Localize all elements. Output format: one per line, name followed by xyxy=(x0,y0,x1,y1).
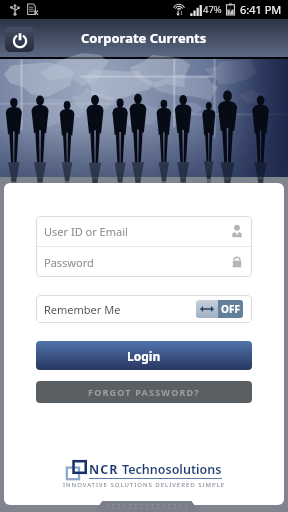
staticText: NCR xyxy=(89,461,119,478)
staticText: 6:41 PM xyxy=(240,2,282,17)
button[interactable]: Remember Me xyxy=(36,295,252,323)
staticText: Password xyxy=(44,255,94,270)
staticText: Technosolutions xyxy=(122,461,222,478)
staticText: Remember Me xyxy=(44,302,121,317)
staticText: Login xyxy=(127,348,161,364)
staticText: FORGOT PASSWORD? xyxy=(88,386,200,398)
button[interactable]: User ID or Email xyxy=(36,216,252,246)
staticText: 47% xyxy=(203,3,222,16)
button[interactable]: Drag handle xyxy=(0,498,288,512)
button[interactable]: FORGOT PASSWORD? xyxy=(36,381,252,403)
staticText: Corporate Currents xyxy=(81,29,207,47)
button[interactable]: Password xyxy=(36,247,252,277)
staticText: OFF xyxy=(221,302,240,316)
button[interactable]: Login xyxy=(36,341,252,370)
staticText: User ID or Email xyxy=(44,224,128,239)
button[interactable]: Power xyxy=(5,27,34,52)
button[interactable]: Remember me toggle, off xyxy=(196,300,243,318)
staticText: INNOVATIVE SOLUTIONS DELIVERED SIMPLE xyxy=(63,481,226,489)
